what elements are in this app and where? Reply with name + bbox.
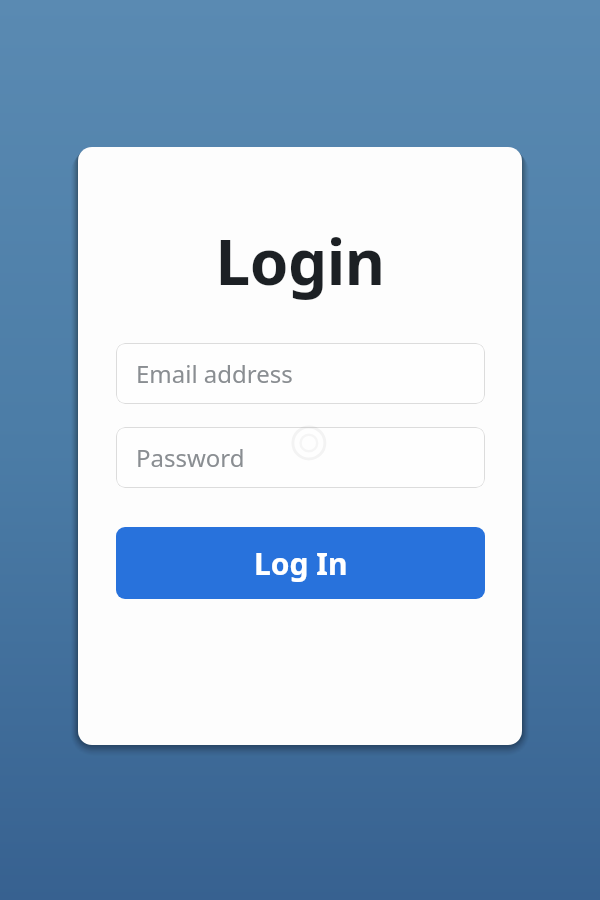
button[interactable]: Email address: [116, 343, 485, 404]
staticText: Email address: [136, 357, 293, 390]
staticText: Login: [78, 219, 522, 303]
staticText: Password: [136, 441, 245, 474]
staticText: Log In: [254, 543, 348, 584]
button[interactable]: Log In: [116, 527, 485, 599]
button[interactable]: Password: [116, 427, 485, 488]
